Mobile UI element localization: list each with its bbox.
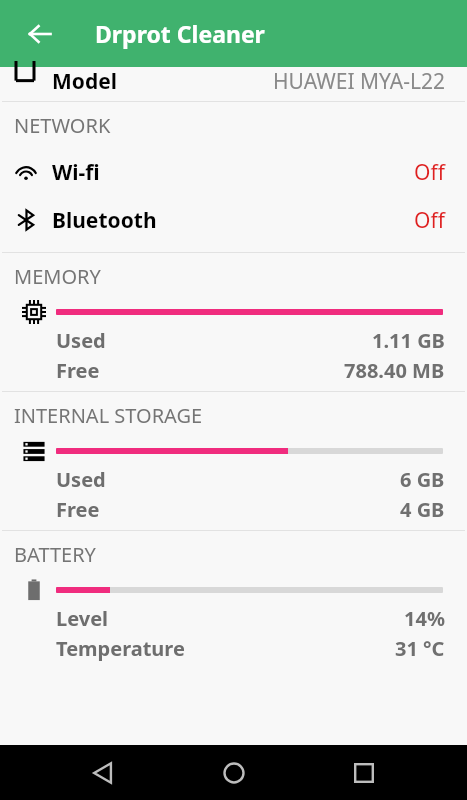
staticText: 4 GB bbox=[400, 496, 445, 523]
staticText: Level bbox=[56, 605, 109, 632]
button[interactable]: Back bbox=[18, 12, 62, 56]
staticText: Free bbox=[56, 496, 100, 523]
staticText: Model bbox=[52, 67, 117, 96]
staticText: 788.40 MB bbox=[344, 357, 445, 384]
staticText: 6 GB bbox=[400, 466, 445, 493]
staticText: Wi-fi bbox=[52, 158, 100, 187]
staticText: Free bbox=[56, 357, 100, 384]
button[interactable]: Wi-fi bbox=[0, 148, 467, 196]
staticText: BATTERY bbox=[14, 541, 96, 568]
staticText: Drprot Cleaner bbox=[95, 18, 265, 49]
button[interactable]: Recent apps bbox=[336, 745, 392, 800]
staticText: HUAWEI MYA-L22 bbox=[273, 67, 445, 96]
staticText: Temperature bbox=[56, 635, 185, 662]
staticText: 14% bbox=[404, 605, 445, 632]
staticText: Used bbox=[56, 327, 106, 354]
button[interactable]: Back bbox=[75, 745, 131, 800]
staticText: Off bbox=[414, 206, 445, 235]
staticText: Off bbox=[414, 158, 445, 187]
button[interactable]: Model bbox=[0, 67, 467, 101]
staticText: 31 °C bbox=[395, 635, 445, 662]
staticText: Used bbox=[56, 466, 106, 493]
button[interactable]: Bluetooth bbox=[0, 196, 467, 244]
staticText: INTERNAL STORAGE bbox=[14, 402, 203, 429]
staticText: MEMORY bbox=[14, 263, 101, 290]
staticText: 1.11 GB bbox=[372, 327, 445, 354]
staticText: Bluetooth bbox=[52, 206, 157, 235]
staticText: NETWORK bbox=[14, 112, 111, 139]
button[interactable]: Home bbox=[206, 745, 262, 800]
